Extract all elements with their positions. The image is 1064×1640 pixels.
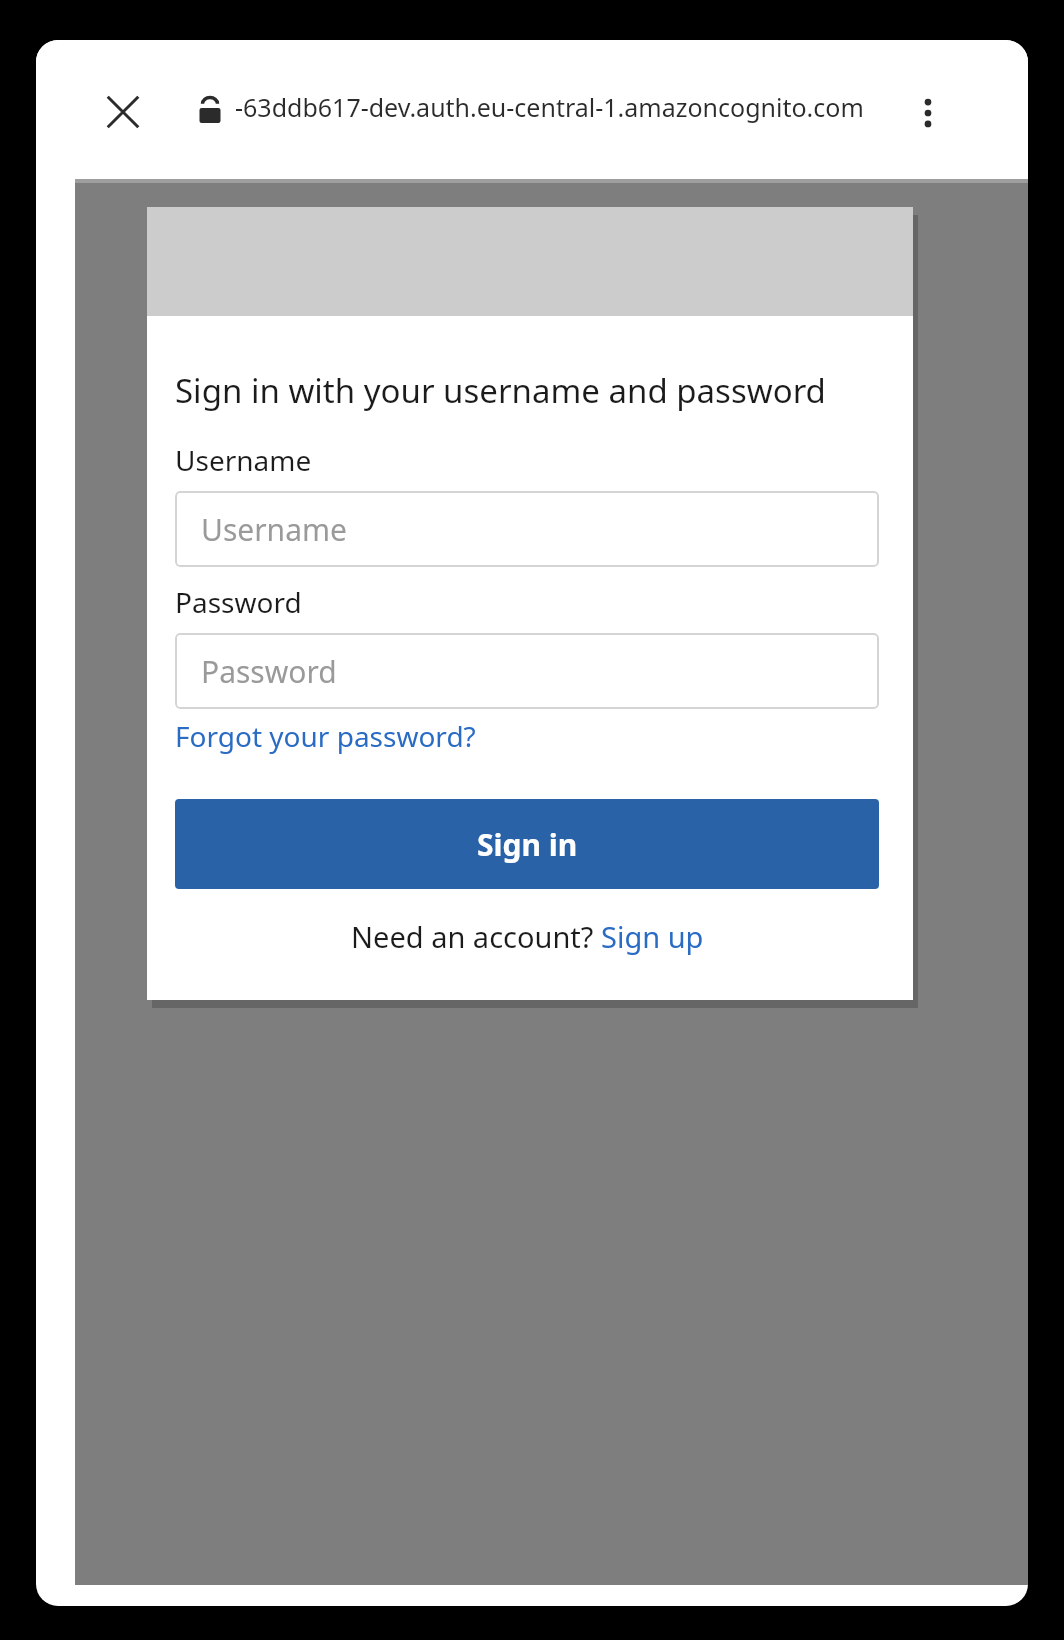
- staticText: -63ddb617-dev.auth.eu-central-1.amazonco…: [235, 90, 905, 124]
- staticText: Sign up: [601, 917, 704, 956]
- staticText: Password: [175, 583, 302, 621]
- staticText: Sign in: [477, 824, 578, 865]
- button[interactable]: Forgot your password?: [175, 717, 476, 755]
- button[interactable]: More options: [900, 85, 956, 141]
- button[interactable]: Close: [98, 87, 148, 137]
- button[interactable]: Sign up: [601, 917, 704, 956]
- staticText: Sign in with your username and password: [175, 368, 826, 413]
- button[interactable]: Password: [175, 633, 879, 709]
- staticText: Need an account?: [351, 917, 601, 956]
- staticText: Username: [175, 441, 312, 479]
- staticText: Username: [201, 509, 347, 550]
- button[interactable]: Username: [175, 491, 879, 567]
- staticText: Forgot your password?: [175, 717, 476, 755]
- button[interactable]: Sign in: [175, 799, 879, 889]
- staticText: Password: [201, 651, 337, 692]
